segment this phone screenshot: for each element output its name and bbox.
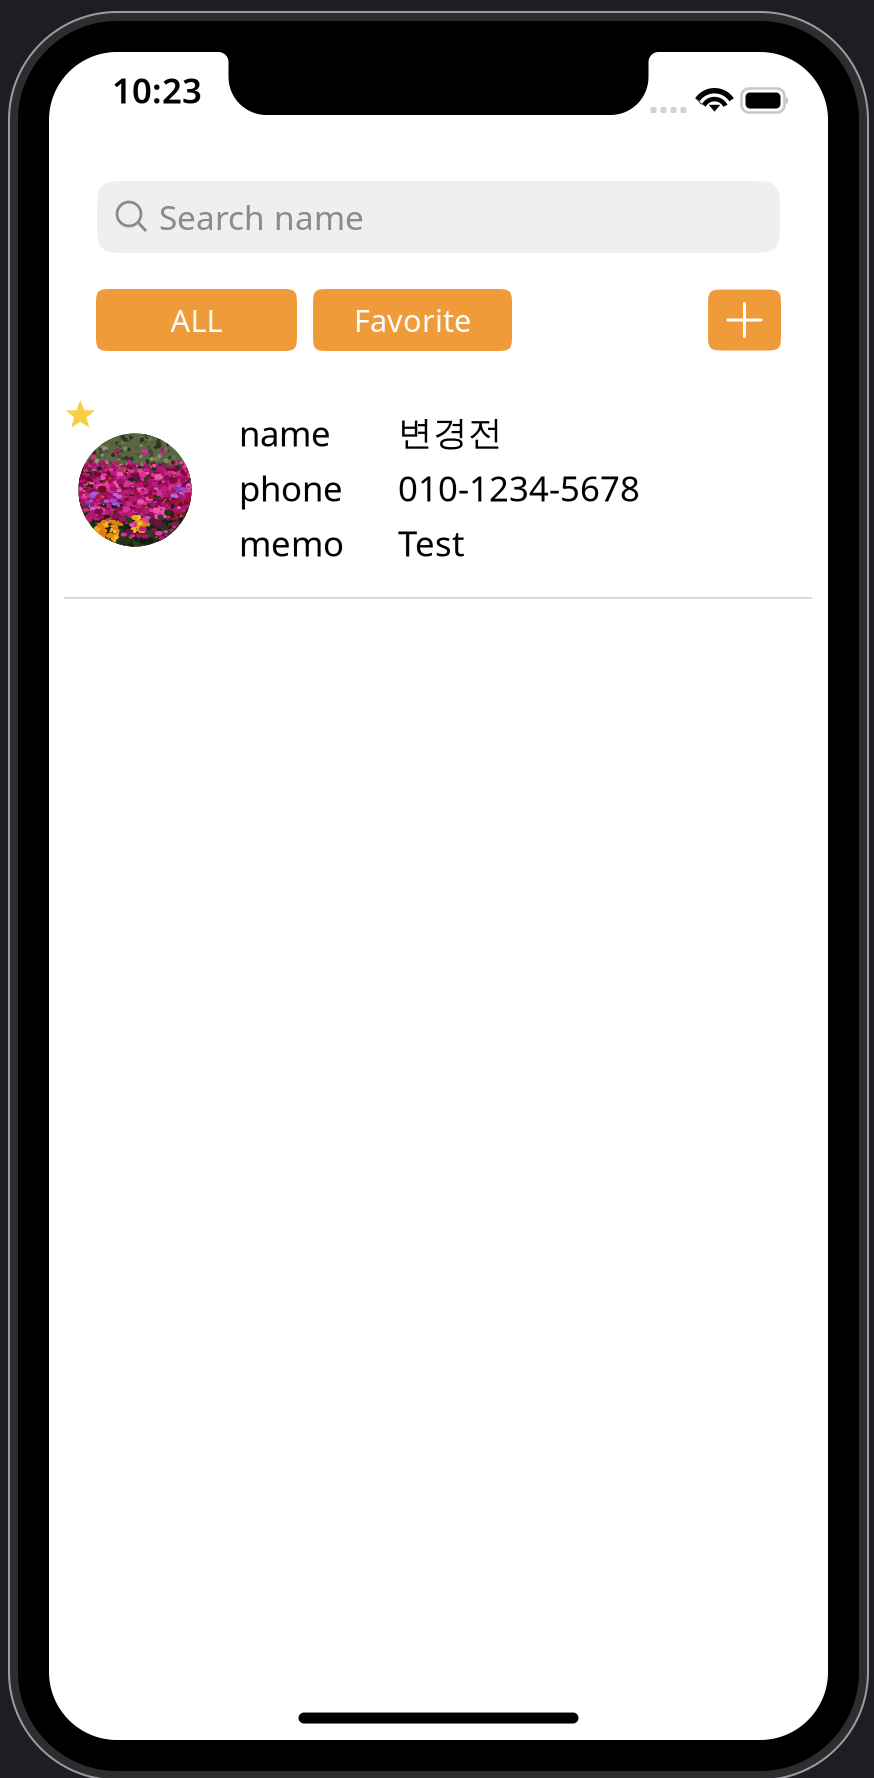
staticText: memo (239, 520, 344, 566)
button[interactable]: ALL (96, 289, 297, 351)
staticText: ALL (170, 300, 222, 340)
staticText: 010-1234-5678 (398, 465, 640, 511)
staticText: 10:23 (112, 67, 202, 113)
staticText: Search name (159, 195, 364, 239)
staticText: Test (398, 520, 465, 566)
staticText: phone (239, 465, 343, 511)
staticText: 변경전 (398, 412, 503, 454)
button[interactable]: Search name (97, 181, 780, 253)
staticText: name (239, 410, 331, 456)
button[interactable]: Add contact (708, 289, 781, 350)
button[interactable]: name (49, 380, 828, 598)
button[interactable]: Favorite (313, 289, 512, 351)
staticText: Favorite (354, 300, 471, 340)
